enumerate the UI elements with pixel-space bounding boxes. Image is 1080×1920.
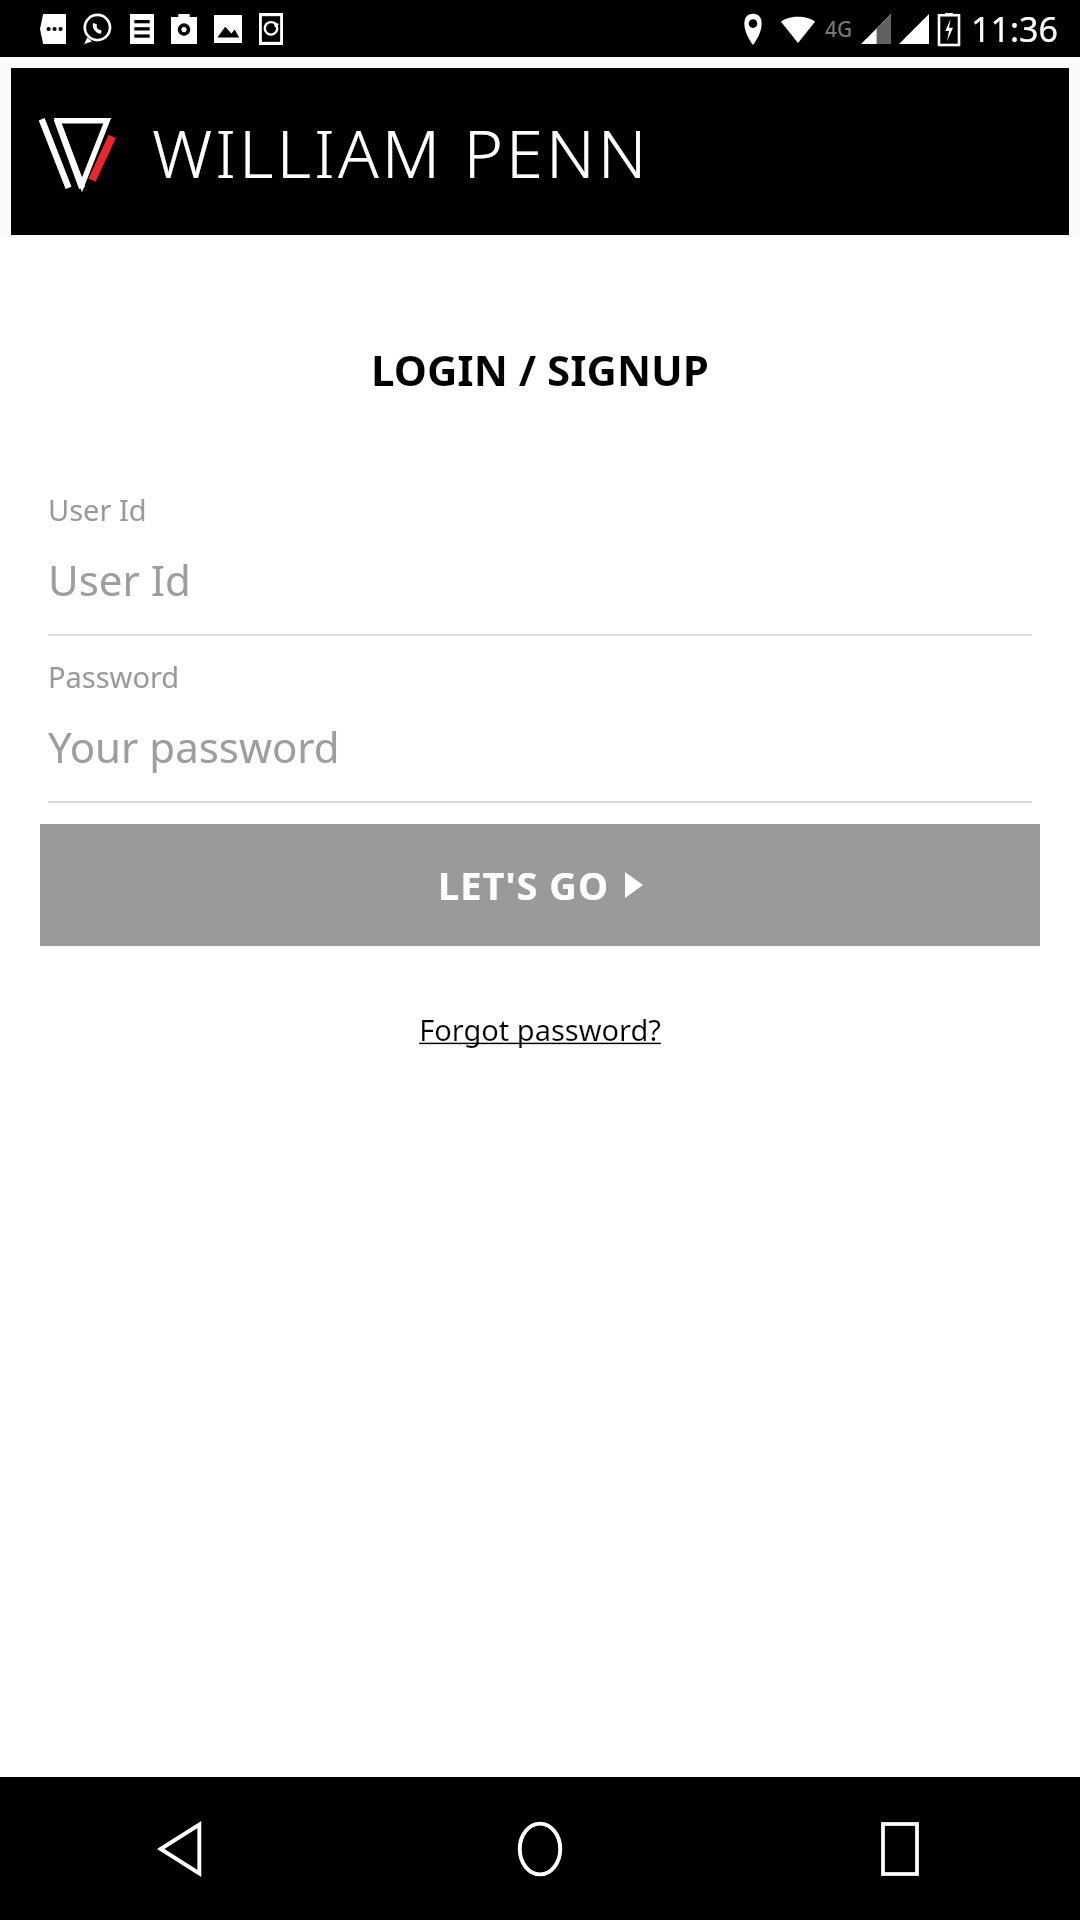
button[interactable]: Password bbox=[48, 657, 1032, 803]
staticText: WILLIAM PENN bbox=[152, 106, 650, 197]
staticText: Your password bbox=[48, 718, 340, 775]
staticText: LOGIN / SIGNUP bbox=[0, 341, 1080, 398]
staticText: User Id bbox=[48, 551, 191, 608]
button[interactable]: LET'S GO bbox=[40, 824, 1040, 946]
button[interactable]: Back bbox=[0, 1777, 360, 1920]
button[interactable]: Home bbox=[360, 1777, 720, 1920]
button[interactable]: User Id bbox=[48, 490, 1032, 636]
staticText: Password bbox=[48, 657, 180, 696]
staticText: User Id bbox=[48, 490, 147, 529]
staticText: 4G bbox=[825, 15, 853, 44]
staticText: 11:36 bbox=[971, 6, 1058, 52]
staticText: LET'S GO bbox=[438, 859, 609, 911]
button[interactable]: Forgot password? bbox=[0, 1010, 1080, 1049]
button[interactable]: Recent apps bbox=[720, 1777, 1080, 1920]
